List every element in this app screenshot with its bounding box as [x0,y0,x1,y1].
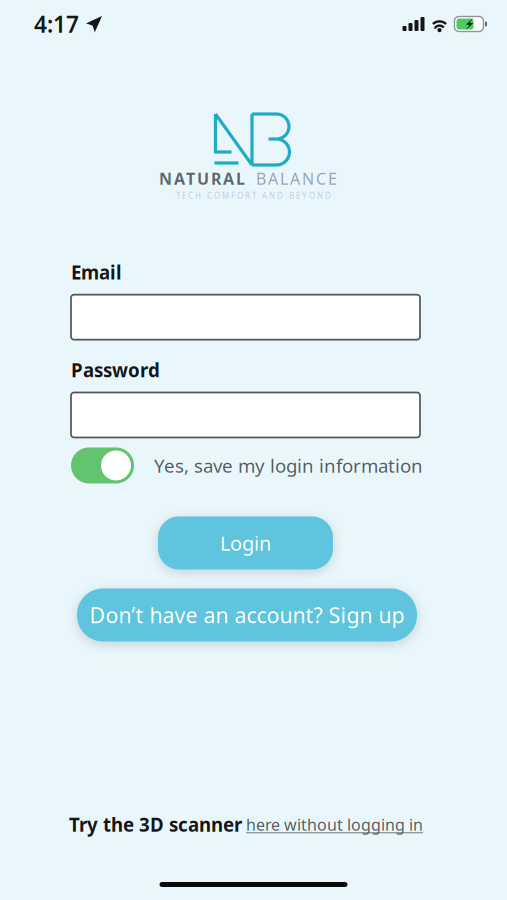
button[interactable] [71,447,134,483]
staticText: here without logging in [246,814,423,835]
staticText: BALANCE [256,168,337,189]
staticText: 4:17 [34,9,79,39]
button[interactable]: Don’t have an account? Sign up [77,588,417,641]
button[interactable]: here without logging in [246,814,423,835]
staticText: NATURAL [159,168,245,189]
staticText: Try the 3D scanner [69,812,242,837]
button[interactable]: Login [158,516,333,569]
staticText: Don’t have an account? Sign up [89,601,404,629]
staticText: Login [220,530,271,556]
staticText: Yes, save my login information [154,453,423,478]
staticText: Password [71,358,160,382]
staticText: T E C H C O M F O R T A N D B E Y O N D [176,190,331,201]
staticText: Email [71,260,122,285]
